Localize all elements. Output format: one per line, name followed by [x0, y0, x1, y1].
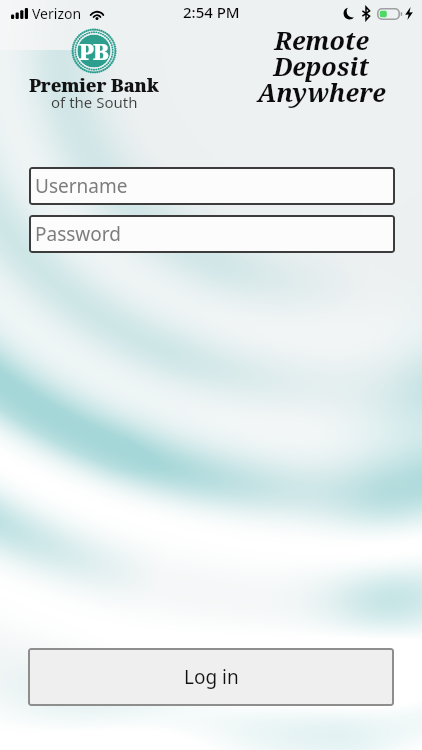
button[interactable]: Password — [29, 215, 395, 253]
staticText: of the South — [51, 92, 138, 112]
staticText: 2:54 PM — [183, 2, 240, 22]
staticText: PB — [79, 36, 109, 66]
staticText: Verizon — [32, 4, 82, 23]
staticText: Premier Bank — [29, 73, 159, 98]
button[interactable]: Log in — [28, 648, 394, 706]
other: Bluetooth — [362, 7, 370, 20]
other: Charging — [405, 7, 413, 20]
staticText: Deposit — [273, 49, 369, 83]
other: Battery — [377, 8, 403, 20]
other: Do not disturb — [343, 7, 356, 20]
staticText: Log in — [184, 664, 239, 690]
button[interactable]: Username — [29, 167, 395, 205]
staticText: Remote — [274, 23, 369, 57]
staticText: Anywhere — [257, 75, 386, 109]
staticText: Username — [35, 173, 128, 199]
staticText: Password — [35, 221, 121, 247]
